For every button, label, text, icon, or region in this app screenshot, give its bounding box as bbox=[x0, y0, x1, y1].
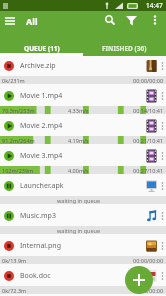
staticText: Movie 1.mp4 bbox=[20, 91, 63, 101]
staticText: 4.19m/s bbox=[68, 137, 89, 144]
button[interactable] bbox=[142, 11, 166, 30]
staticText: 102m/239m bbox=[2, 167, 34, 174]
staticText: 00:00/00:00 bbox=[133, 77, 164, 84]
staticText: Book.doc bbox=[20, 271, 51, 281]
staticText: 00:27/10:41 bbox=[133, 167, 164, 174]
staticText: 0k/72.3m bbox=[2, 287, 27, 294]
staticText: All bbox=[26, 15, 38, 27]
button[interactable]: Launcher.apk bbox=[0, 176, 166, 196]
staticText: 00:21/10:41 bbox=[133, 137, 164, 144]
staticText: Archive.zip bbox=[20, 61, 56, 71]
staticText: 91.2m/264m bbox=[2, 137, 35, 144]
button[interactable] bbox=[125, 266, 153, 294]
staticText: 4.33m/s bbox=[68, 107, 89, 114]
button[interactable]: QUEUE (11) bbox=[0, 30, 83, 56]
staticText: 0k/231m bbox=[2, 77, 25, 84]
button[interactable] bbox=[0, 11, 20, 30]
staticText: Movie 2.mp4 bbox=[20, 121, 63, 131]
button[interactable]: Music.mp3 bbox=[0, 206, 166, 226]
staticText: Music.mp3 bbox=[20, 211, 56, 221]
staticText: waiting in queue bbox=[57, 227, 101, 234]
button[interactable]: FINISHED (36) bbox=[83, 30, 166, 56]
button[interactable]: Movie 3.mp4 bbox=[0, 146, 166, 166]
button[interactable] bbox=[121, 11, 142, 30]
button[interactable]: Book.doc bbox=[0, 266, 166, 286]
button[interactable]: Archive.zip bbox=[0, 56, 166, 76]
staticText: 0k/13.9m bbox=[2, 257, 27, 264]
button[interactable]: Movie 1.mp4 bbox=[0, 86, 166, 106]
staticText: Launcher.apk bbox=[20, 181, 64, 191]
staticText: 4.00m/s bbox=[68, 167, 89, 174]
button[interactable]: Movie 2.mp4 bbox=[0, 116, 166, 136]
button[interactable] bbox=[100, 11, 121, 30]
staticText: Internal.png bbox=[20, 241, 61, 251]
staticText: FINISHED (36) bbox=[102, 44, 147, 53]
staticText: 70.3m/253m bbox=[2, 107, 35, 114]
staticText: 00:00/00:00 bbox=[133, 257, 164, 264]
staticText: 14:47 bbox=[146, 1, 163, 10]
staticText: Movie 3.mp4 bbox=[20, 151, 63, 161]
staticText: waiting in queue bbox=[57, 197, 101, 204]
staticText: 00:14/10:41 bbox=[133, 107, 164, 114]
staticText: 00:00/00:00 bbox=[133, 287, 164, 294]
button[interactable]: Internal.png bbox=[0, 236, 166, 256]
staticText: QUEUE (11) bbox=[24, 44, 60, 53]
